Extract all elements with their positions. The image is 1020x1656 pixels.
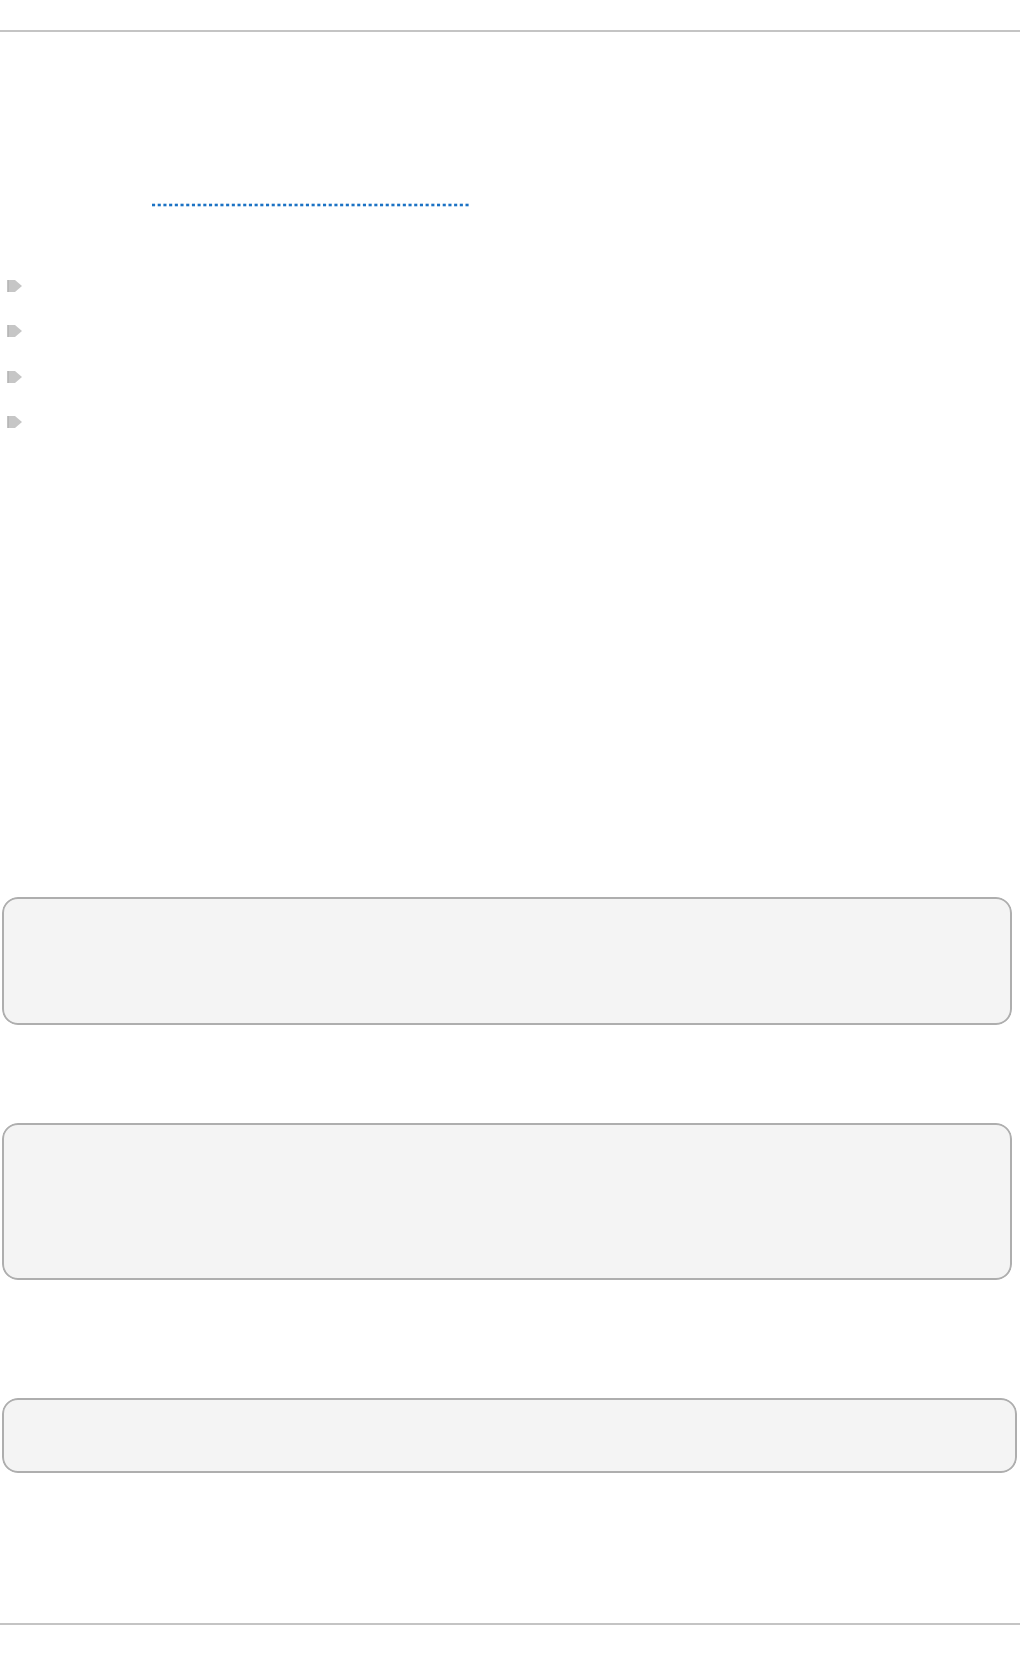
button[interactable]: Expand — [6, 277, 26, 295]
button[interactable]: Expand — [6, 368, 26, 386]
button[interactable]: Panel 3 — [2, 1398, 1017, 1473]
button[interactable]: Panel 1 — [2, 897, 1012, 1025]
button[interactable]: Expand — [6, 322, 26, 340]
button[interactable]: Panel 2 — [2, 1123, 1012, 1280]
button[interactable]: Expand — [6, 413, 26, 431]
